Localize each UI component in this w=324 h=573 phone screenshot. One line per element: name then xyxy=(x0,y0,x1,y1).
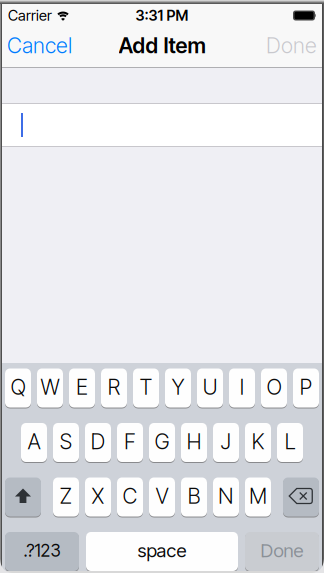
staticText: F xyxy=(124,429,136,454)
staticText: U xyxy=(202,374,217,400)
button[interactable]: U xyxy=(197,368,223,408)
staticText: J xyxy=(220,429,231,454)
button[interactable]: N xyxy=(213,477,239,517)
button[interactable]: Y xyxy=(165,368,191,408)
staticText: Add Item xyxy=(118,33,205,58)
button[interactable]: space xyxy=(86,531,238,571)
staticText: S xyxy=(59,429,72,454)
staticText: space xyxy=(137,539,186,561)
staticText: I xyxy=(239,374,244,400)
staticText: H xyxy=(186,429,201,454)
staticText: T xyxy=(139,374,152,400)
button[interactable]: Done xyxy=(266,33,317,58)
button[interactable]: E xyxy=(69,368,95,408)
button[interactable]: O xyxy=(261,368,287,408)
staticText: Z xyxy=(59,483,72,509)
button[interactable]: F xyxy=(117,422,143,462)
button[interactable]: Cancel xyxy=(7,33,72,58)
button[interactable]: A xyxy=(21,422,47,462)
staticText: W xyxy=(40,374,59,400)
staticText: C xyxy=(122,483,137,509)
button[interactable]: Done xyxy=(245,531,319,571)
button[interactable]: C xyxy=(117,477,143,517)
staticText: G xyxy=(154,429,169,454)
staticText: L xyxy=(284,429,295,454)
staticText: D xyxy=(90,429,105,454)
button[interactable]: H xyxy=(181,422,207,462)
staticText: K xyxy=(251,429,264,454)
staticText: X xyxy=(91,483,104,509)
button[interactable]: K xyxy=(245,422,271,462)
button[interactable]: D xyxy=(85,422,111,462)
staticText: Y xyxy=(171,374,184,400)
button[interactable]: X xyxy=(85,477,111,517)
staticText: PM xyxy=(166,7,188,24)
button[interactable]: M xyxy=(245,477,271,517)
button[interactable]: Q xyxy=(5,368,31,408)
staticText: R xyxy=(107,374,120,400)
button[interactable]: J xyxy=(213,422,239,462)
staticText: Q xyxy=(10,374,25,400)
staticText: Carrier xyxy=(8,7,52,24)
staticText: Done xyxy=(266,33,317,58)
button[interactable]: V xyxy=(149,477,175,517)
staticText: .?123 xyxy=(23,540,60,561)
staticText: O xyxy=(266,374,281,400)
button[interactable]: Shift xyxy=(5,477,41,517)
button[interactable]: T xyxy=(133,368,159,408)
button[interactable]: Delete xyxy=(283,477,319,517)
button[interactable]: Numbers xyxy=(5,531,79,571)
staticText: N xyxy=(218,483,234,509)
button[interactable]: Z xyxy=(53,477,79,517)
button[interactable]: P xyxy=(293,368,319,408)
staticText: B xyxy=(187,483,200,509)
staticText: E xyxy=(76,374,88,400)
button[interactable]: L xyxy=(277,422,303,462)
button[interactable]: S xyxy=(53,422,79,462)
button[interactable]: R xyxy=(101,368,127,408)
staticText: P xyxy=(299,374,312,400)
staticText: A xyxy=(27,429,40,454)
button[interactable]: G xyxy=(149,422,175,462)
staticText: Done xyxy=(260,539,303,561)
button[interactable]: W xyxy=(37,368,63,408)
button[interactable]: Item name xyxy=(2,104,322,146)
button[interactable]: I xyxy=(229,368,255,408)
staticText: Cancel xyxy=(7,33,72,58)
staticText: M xyxy=(249,483,267,509)
button[interactable]: B xyxy=(181,477,207,517)
staticText: V xyxy=(155,483,168,509)
staticText: 3:31 xyxy=(135,7,163,24)
